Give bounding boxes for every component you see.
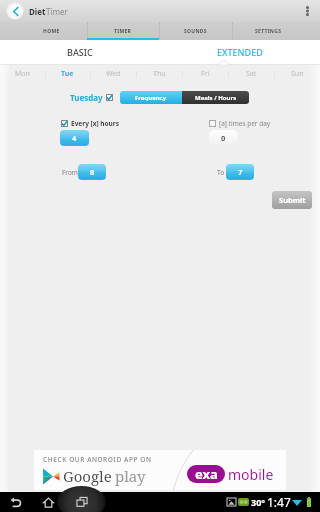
staticText: EXTENDED <box>217 46 263 58</box>
staticText: Submit <box>279 195 306 205</box>
button[interactable]: Tue <box>45 64 90 84</box>
button[interactable]: SETTINGS <box>232 22 305 40</box>
staticText: 8 <box>90 167 95 177</box>
button[interactable]: 7 <box>226 164 254 180</box>
staticText: 1:47 <box>267 494 291 510</box>
button[interactable]: 0 <box>209 130 238 146</box>
button[interactable]: Submit <box>272 191 312 209</box>
button[interactable]: Back <box>7 493 25 511</box>
button[interactable]: 8 <box>78 164 106 180</box>
button[interactable]: BASIC <box>0 40 160 64</box>
staticText: HOME <box>43 28 60 35</box>
button[interactable]: Thu <box>136 64 182 84</box>
staticText: Google <box>63 466 112 486</box>
staticText: 30° <box>251 496 266 508</box>
button[interactable]: Sun <box>274 64 320 84</box>
staticText: Meals / Hours <box>195 94 237 102</box>
button[interactable]: Frequency <box>120 91 182 104</box>
staticText: Timer <box>46 6 68 17</box>
staticText: mobile <box>228 465 274 484</box>
staticText: Tuesday <box>70 92 103 103</box>
staticText: [a] times per day <box>219 119 271 128</box>
button[interactable]: 4 <box>60 130 89 146</box>
button[interactable]: Sat <box>228 64 274 84</box>
staticText: Tue <box>61 69 74 79</box>
staticText: 0 <box>221 133 226 143</box>
staticText: Mon <box>15 69 30 79</box>
button[interactable]: Recent apps <box>57 492 106 512</box>
button[interactable]: SOUNDS <box>159 22 232 40</box>
button[interactable]: TIMER <box>87 22 159 40</box>
button[interactable]: Home <box>39 493 57 511</box>
button[interactable]: HOME <box>15 22 87 40</box>
staticText: SETTINGS <box>255 28 282 35</box>
button[interactable]: Mon <box>0 64 45 84</box>
staticText: 4 <box>72 133 77 143</box>
staticText: exa <box>195 465 218 483</box>
staticText: Diet <box>29 6 46 17</box>
staticText: Sat <box>246 69 257 79</box>
button[interactable]: Wed <box>90 64 136 84</box>
button[interactable]: Back <box>6 2 24 20</box>
staticText: Sun <box>291 69 304 79</box>
staticText: Thu <box>153 69 166 79</box>
staticText: Fri <box>201 69 210 79</box>
button[interactable]: Checked <box>106 94 113 101</box>
staticText: play <box>115 466 146 486</box>
button[interactable]: Meals / Hours <box>182 91 249 104</box>
button[interactable]: More options <box>298 0 316 22</box>
button[interactable]: Advertisement <box>34 450 286 490</box>
staticText: From <box>62 168 78 177</box>
staticText: BASIC <box>67 46 93 58</box>
button[interactable]: Unchecked <box>209 120 216 127</box>
staticText: Every [x] hours <box>71 119 119 128</box>
staticText: 7 <box>238 167 243 177</box>
staticText: TIMER <box>114 28 132 35</box>
staticText: CHECK OUR ANDROID APP ON <box>43 455 152 464</box>
button[interactable]: Checked <box>61 120 68 127</box>
staticText: Frequency <box>135 94 167 102</box>
button[interactable]: Fri <box>182 64 228 84</box>
button[interactable]: EXTENDED <box>160 40 320 64</box>
staticText: To <box>217 168 225 177</box>
staticText: SOUNDS <box>184 28 207 35</box>
staticText: Wed <box>106 69 121 79</box>
